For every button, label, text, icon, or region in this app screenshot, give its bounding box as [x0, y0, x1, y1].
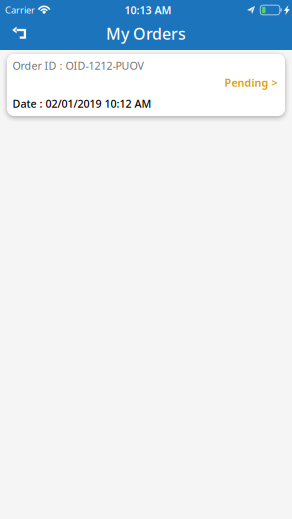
staticText: Pending > — [224, 75, 277, 90]
button[interactable]: Back — [0, 22, 40, 48]
staticText: Date : 02/01/2019 10:12 AM — [12, 96, 151, 111]
button[interactable]: Order ID : OID-1212-PUOV — [7, 54, 285, 116]
staticText: Order ID : OID-1212-PUOV — [12, 58, 143, 73]
staticText: Carrier — [5, 4, 35, 16]
button[interactable]: Pending > — [222, 74, 279, 91]
staticText: My Orders — [106, 23, 186, 44]
staticText: 10:13 AM — [124, 3, 171, 17]
